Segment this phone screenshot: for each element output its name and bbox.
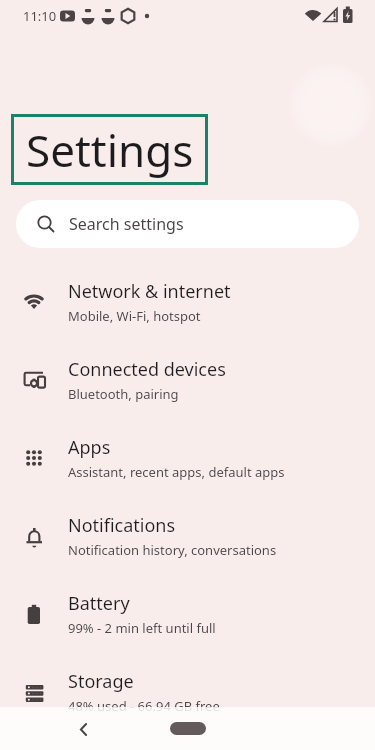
staticText: 99% - 2 min left until full xyxy=(68,619,216,637)
staticText: Search settings xyxy=(69,213,184,235)
staticText: Battery xyxy=(68,591,130,616)
staticText: Settings xyxy=(26,120,194,180)
button[interactable]: Network & internet xyxy=(0,263,375,341)
staticText: Apps xyxy=(68,435,111,460)
staticText: 11:10 xyxy=(23,7,57,25)
staticText: Assistant, recent apps, default apps xyxy=(68,463,285,481)
staticText: Mobile, Wi-Fi, hotspot xyxy=(68,307,201,325)
button[interactable] xyxy=(170,722,206,735)
staticText: Connected devices xyxy=(68,357,226,382)
button[interactable]: Notifications xyxy=(0,497,375,575)
button[interactable] xyxy=(70,716,96,742)
staticText: Storage xyxy=(68,669,134,694)
staticText: Notification history, conversations xyxy=(68,541,277,559)
staticText: Bluetooth, pairing xyxy=(68,385,179,403)
button[interactable]: Storage xyxy=(0,653,375,731)
button[interactable]: Connected devices xyxy=(0,341,375,419)
button[interactable]: Battery xyxy=(0,575,375,653)
staticText: 48% used - 66.94 GB free xyxy=(68,697,220,715)
staticText: Network & internet xyxy=(68,279,231,304)
staticText: Notifications xyxy=(68,513,176,538)
button[interactable]: Apps xyxy=(0,419,375,497)
button[interactable]: Search settings xyxy=(16,200,359,248)
